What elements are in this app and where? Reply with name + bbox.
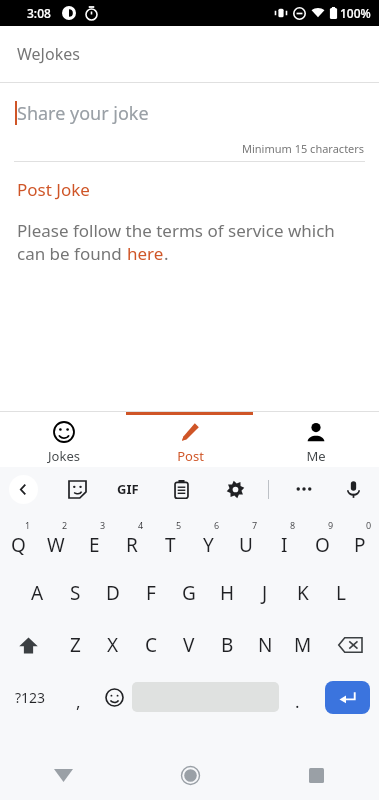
staticText: can be found — [17, 242, 127, 265]
button[interactable]: 8 — [265, 515, 303, 567]
button[interactable]: , — [60, 671, 96, 723]
staticText: Y — [203, 532, 214, 558]
staticText: W — [47, 532, 65, 558]
button[interactable]: Voice input — [338, 474, 368, 504]
button[interactable]: J — [246, 567, 284, 619]
button[interactable]: H — [208, 567, 246, 619]
staticText: 100% — [340, 5, 371, 21]
button[interactable]: D — [94, 567, 132, 619]
staticText: here — [127, 242, 164, 265]
button[interactable]: 9 — [303, 515, 341, 567]
button[interactable]: Shift — [0, 619, 56, 671]
button[interactable]: 4 — [113, 515, 151, 567]
staticText: 6 — [214, 519, 220, 531]
button[interactable]: GIF — [111, 472, 145, 506]
staticText: B — [221, 632, 234, 658]
staticText: X — [107, 632, 119, 658]
staticText: 3:08 — [27, 5, 51, 21]
staticText: J — [262, 580, 268, 606]
button[interactable]: Z — [56, 619, 94, 671]
staticText: 4 — [138, 519, 144, 531]
button[interactable]: Post — [127, 412, 253, 467]
staticText: GIF — [117, 480, 139, 498]
staticText: F — [146, 580, 156, 606]
staticText: 0 — [366, 519, 372, 531]
staticText: P — [354, 532, 366, 558]
button[interactable]: 3 — [75, 515, 113, 567]
staticText: O — [315, 532, 330, 558]
staticText: H — [220, 580, 235, 606]
button[interactable]: C — [132, 619, 170, 671]
staticText: 7 — [252, 519, 258, 531]
staticText: Share your joke — [17, 101, 149, 126]
button[interactable]: Keyboard settings — [220, 474, 250, 504]
staticText: N — [258, 632, 273, 658]
button[interactable]: 6 — [189, 515, 227, 567]
staticText: E — [89, 532, 100, 558]
staticText: D — [106, 580, 120, 606]
staticText: V — [183, 632, 195, 658]
staticText: 9 — [328, 519, 334, 531]
button[interactable]: Back — [0, 750, 127, 800]
staticText: Post Joke — [17, 178, 90, 201]
staticText: 3 — [100, 519, 106, 531]
staticText: Please follow the terms of service which — [17, 219, 335, 242]
button[interactable]: 7 — [227, 515, 265, 567]
button[interactable]: X — [94, 619, 132, 671]
button[interactable]: Emoji — [96, 671, 132, 723]
staticText: G — [182, 580, 196, 606]
button[interactable]: Close keyboard toolbar — [9, 475, 38, 504]
staticText: Z — [70, 632, 81, 658]
button[interactable]: B — [208, 619, 246, 671]
button[interactable]: Jokes — [0, 412, 127, 467]
staticText: , — [76, 690, 81, 713]
button[interactable]: Enter — [325, 681, 370, 714]
button[interactable]: K — [284, 567, 322, 619]
button[interactable]: V — [170, 619, 208, 671]
staticText: 5 — [176, 519, 182, 531]
staticText: . — [295, 690, 300, 713]
staticText: I — [281, 532, 288, 558]
staticText: 2 — [62, 519, 68, 531]
staticText: ?123 — [15, 688, 46, 707]
button[interactable]: . — [279, 671, 315, 723]
staticText: S — [70, 580, 81, 606]
staticText: R — [126, 532, 138, 558]
button[interactable]: L — [322, 567, 360, 619]
button[interactable]: 5 — [151, 515, 189, 567]
button[interactable]: More options — [288, 473, 320, 505]
button[interactable]: M — [284, 619, 322, 671]
button[interactable]: 1 — [0, 515, 37, 567]
staticText: Minimum 15 characters — [242, 141, 365, 156]
button[interactable]: here — [127, 242, 164, 265]
button[interactable]: A — [18, 567, 56, 619]
button[interactable]: Backspace — [322, 619, 379, 671]
button[interactable]: Recent apps — [253, 750, 379, 800]
staticText: Q — [11, 532, 26, 558]
button[interactable]: Stickers — [62, 474, 92, 504]
button[interactable]: N — [246, 619, 284, 671]
staticText: C — [145, 632, 158, 658]
staticText: T — [165, 532, 176, 558]
button[interactable]: Clipboard — [166, 474, 196, 504]
button[interactable]: Share your joke — [0, 97, 379, 141]
staticText: M — [294, 632, 312, 658]
button[interactable]: Me — [253, 412, 379, 467]
staticText: A — [31, 580, 44, 606]
staticText: 1 — [25, 519, 31, 531]
button[interactable]: Home — [127, 750, 253, 800]
staticText: Post — [177, 447, 204, 465]
button[interactable]: S — [56, 567, 94, 619]
button[interactable]: 2 — [37, 515, 75, 567]
staticText: WeJokes — [17, 43, 80, 65]
staticText: U — [239, 532, 253, 558]
button[interactable]: G — [170, 567, 208, 619]
button[interactable]: 0 — [341, 515, 379, 567]
button[interactable]: Post Joke — [0, 176, 107, 203]
button[interactable]: F — [132, 567, 170, 619]
staticText: 8 — [290, 519, 296, 531]
staticText: . — [164, 242, 169, 265]
staticText: L — [336, 580, 346, 606]
button[interactable]: ?123 — [0, 671, 60, 723]
